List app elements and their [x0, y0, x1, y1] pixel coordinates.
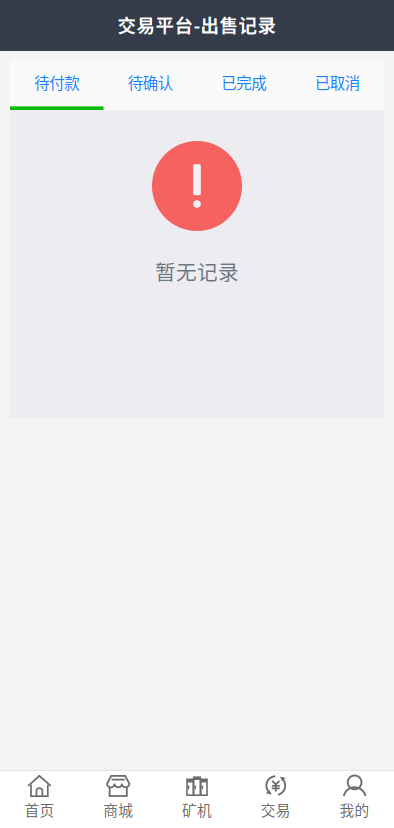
staticText: 待确认 — [128, 71, 173, 93]
button[interactable]: 交易 — [236, 771, 315, 828]
staticText: 首页 — [24, 799, 54, 820]
button[interactable]: 已取消 — [290, 60, 384, 110]
button[interactable]: 矿机 — [158, 771, 236, 828]
staticText: 矿机 — [182, 799, 212, 820]
staticText: 交易 — [261, 799, 291, 820]
staticText: 暂无记录 — [155, 256, 239, 286]
staticText: 待付款 — [34, 71, 79, 93]
staticText: 我的 — [340, 799, 370, 820]
button[interactable]: 首页 — [0, 771, 79, 828]
staticText: 商城 — [103, 799, 133, 820]
button[interactable]: 待确认 — [103, 60, 197, 110]
button[interactable]: 待付款 — [10, 60, 103, 110]
staticText: 已取消 — [315, 71, 360, 93]
button[interactable]: 我的 — [315, 771, 394, 828]
button[interactable]: 商城 — [79, 771, 158, 828]
staticText: 已完成 — [221, 71, 266, 93]
staticText: 交易平台-出售记录 — [117, 11, 276, 38]
button[interactable]: 已完成 — [197, 60, 290, 110]
